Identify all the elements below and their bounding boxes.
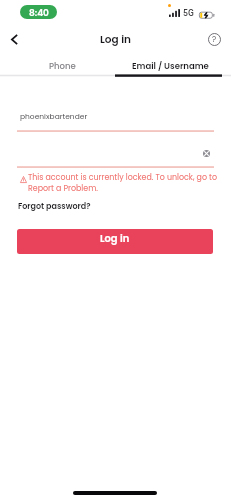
button[interactable]: Forgot password?	[18, 201, 91, 212]
staticText: Log in	[100, 232, 130, 246]
staticText: Phone	[49, 60, 76, 72]
staticText: 8:40	[29, 7, 49, 19]
button[interactable]: Clear text	[199, 146, 213, 160]
staticText: Forgot password?	[18, 201, 91, 212]
staticText: phoenixbartender	[20, 111, 88, 121]
button[interactable]: Log in	[17, 229, 213, 254]
staticText: Report a Problem.	[28, 183, 98, 194]
staticText: 5G	[183, 8, 194, 18]
staticText: This account is currently locked. To unl…	[28, 172, 218, 183]
button[interactable]: Phone	[0, 56, 115, 75]
button[interactable]: Email / Username	[117, 56, 224, 75]
staticText: Log in	[0, 32, 231, 47]
staticText: Email / Username	[132, 60, 209, 72]
button[interactable]: Back	[1, 26, 27, 52]
button[interactable]: Help	[202, 26, 227, 52]
staticText: ?	[212, 34, 217, 45]
